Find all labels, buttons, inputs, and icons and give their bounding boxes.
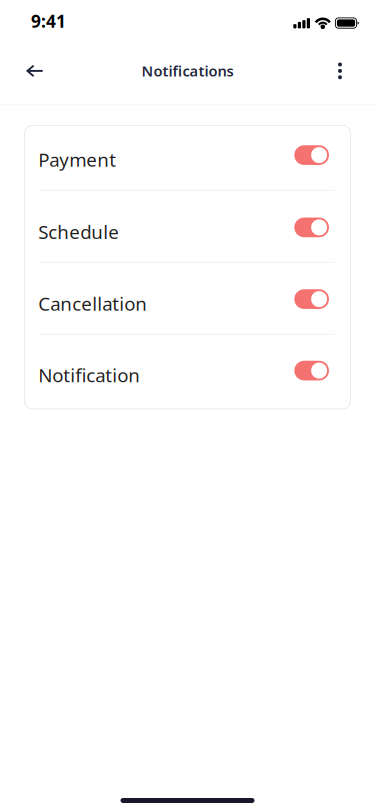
button[interactable]: Back (13, 49, 57, 93)
button[interactable]: Notification (24, 335, 350, 409)
button[interactable]: Cancellation (24, 263, 350, 335)
button[interactable]: More options (318, 49, 362, 93)
button[interactable]: Payment (24, 125, 350, 191)
staticText: Notifications (141, 61, 233, 81)
staticText: Cancellation (38, 291, 147, 316)
staticText: 9:41 (31, 10, 66, 33)
staticText: Notification (38, 362, 140, 387)
button[interactable]: Schedule (24, 191, 350, 263)
staticText: Payment (38, 147, 116, 172)
staticText: Schedule (38, 219, 119, 244)
